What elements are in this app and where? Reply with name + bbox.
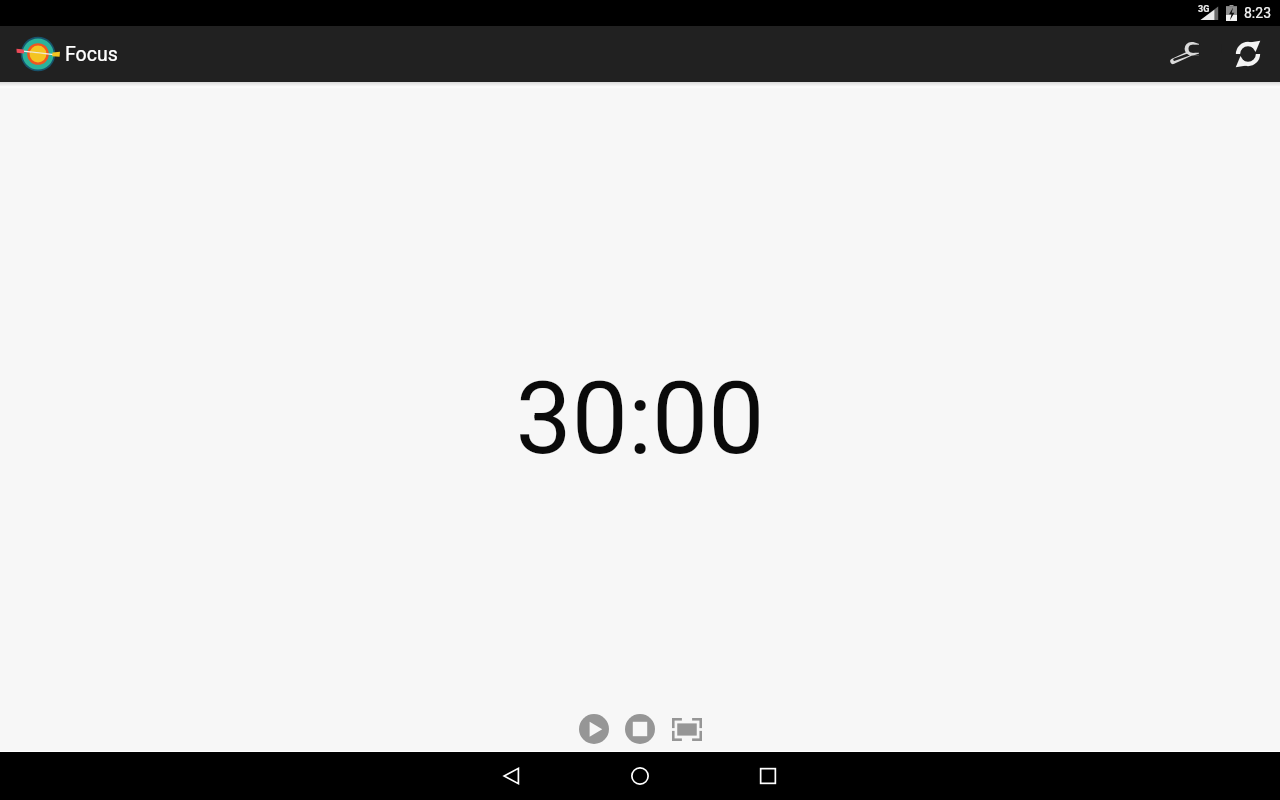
staticText: Focus bbox=[65, 43, 118, 66]
button[interactable]: Home bbox=[576, 752, 704, 800]
button[interactable]: Fullscreen bbox=[663, 706, 710, 752]
staticText: 8:23 bbox=[1244, 5, 1271, 21]
staticText: 30:00 bbox=[515, 360, 765, 477]
staticText: 3G bbox=[1198, 4, 1210, 15]
button[interactable]: Settings bbox=[1156, 26, 1220, 82]
button[interactable]: Back bbox=[448, 752, 576, 800]
button[interactable]: Stop bbox=[617, 706, 663, 752]
button[interactable]: Play bbox=[571, 706, 617, 752]
button[interactable]: Recents bbox=[704, 752, 832, 800]
button[interactable]: Reset bbox=[1220, 26, 1276, 82]
